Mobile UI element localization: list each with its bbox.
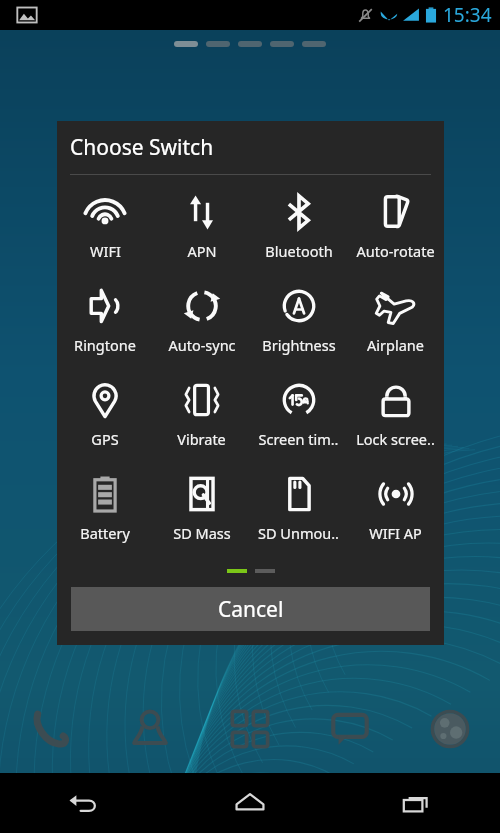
staticText: Bluetooth [265, 241, 333, 261]
staticText: Brightness [262, 335, 336, 355]
staticText: Vibrate [177, 429, 226, 449]
button[interactable]: Battery [57, 471, 153, 543]
button[interactable]: Recent apps [390, 776, 444, 830]
staticText: Cancel [218, 595, 284, 624]
button[interactable]: Ringtone [57, 283, 153, 355]
button[interactable]: Vibrate [153, 377, 250, 449]
button[interactable]: APN [153, 189, 250, 261]
button[interactable]: GPS [57, 377, 153, 449]
staticText: Ringtone [74, 335, 136, 355]
button[interactable]: Messaging [322, 701, 378, 757]
button[interactable]: WIFI [57, 189, 153, 261]
button[interactable]: Lock scree.. [347, 377, 444, 449]
button[interactable]: Cancel [71, 587, 430, 631]
button[interactable]: Bluetooth [250, 189, 347, 261]
button[interactable]: Contacts [122, 701, 178, 757]
button[interactable]: SD Unmou.. [250, 471, 347, 543]
staticText: Choose Switch [70, 133, 214, 162]
staticText: SD Mass [173, 523, 231, 543]
button[interactable]: WIFI AP [347, 471, 444, 543]
staticText: Lock scree.. [356, 429, 435, 449]
staticText: Screen tim.. [258, 429, 339, 449]
staticText: WIFI [90, 241, 121, 261]
staticText: WIFI AP [369, 523, 422, 543]
button[interactable]: Screen tim.. [250, 377, 347, 449]
button[interactable]: SD Mass [153, 471, 250, 543]
button[interactable]: All apps [222, 701, 278, 757]
staticText: Auto-sync [168, 335, 236, 355]
button[interactable]: Auto-rotate [347, 189, 444, 261]
button[interactable]: Brightness [250, 283, 347, 355]
button[interactable]: Back [56, 776, 110, 830]
staticText: Auto-rotate [356, 241, 435, 261]
staticText: 15:34 [443, 2, 492, 28]
staticText: GPS [91, 429, 119, 449]
button[interactable]: Airplane [347, 283, 444, 355]
button[interactable]: Auto-sync [153, 283, 250, 355]
button[interactable]: Browser [422, 701, 478, 757]
staticText: Airplane [367, 335, 424, 355]
staticText: APN [187, 241, 217, 261]
button[interactable]: Home [223, 776, 277, 830]
staticText: Battery [80, 523, 130, 543]
staticText: SD Unmou.. [258, 523, 339, 543]
button[interactable]: Phone [22, 701, 78, 757]
